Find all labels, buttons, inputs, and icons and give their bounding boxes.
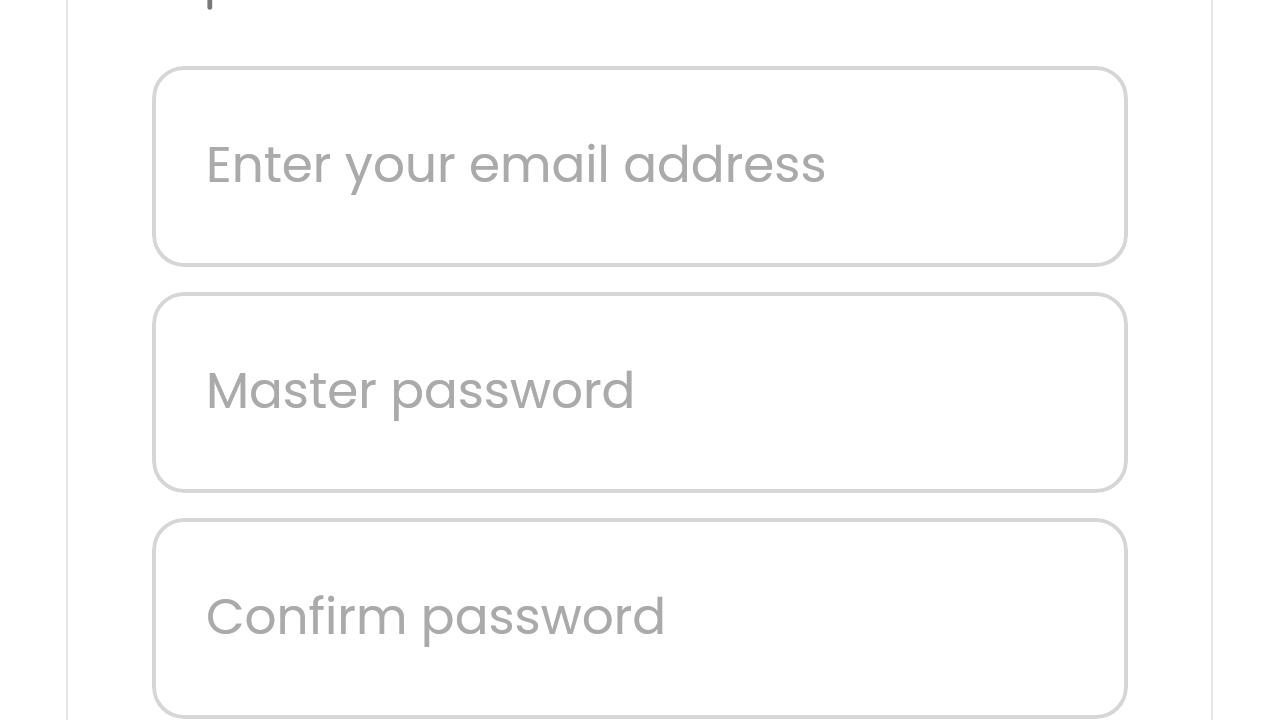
staticText: Enter your email address xyxy=(206,130,827,200)
button[interactable]: Enter your email address xyxy=(152,66,1128,267)
staticText: Master password xyxy=(206,356,636,426)
button[interactable]: Confirm password xyxy=(152,518,1128,719)
staticText: Confirm password xyxy=(206,582,667,652)
button[interactable]: Master password xyxy=(152,292,1128,493)
